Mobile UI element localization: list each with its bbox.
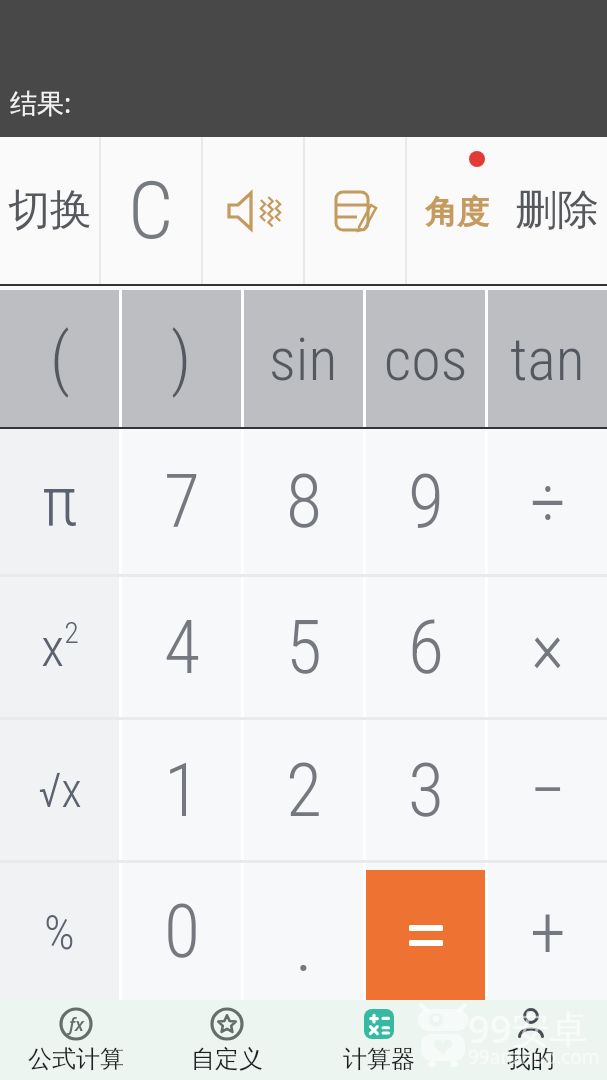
staticText: 6 [408,604,444,691]
staticText: 4 [164,604,200,691]
button[interactable]: 5 [244,577,363,717]
staticText: 1 [164,747,200,834]
staticText: . [295,902,313,989]
staticText: 切换 [8,184,92,237]
staticText: 9 [408,458,444,545]
button[interactable]: % [0,863,119,1000]
staticText: 99anzhuo.com [468,1044,600,1070]
button[interactable]: . [244,863,363,1000]
button[interactable] [203,137,303,284]
staticText: tan [510,324,585,394]
button[interactable]: 0 [122,863,241,1000]
button[interactable]: √x [0,720,119,860]
staticText: 自定义 [191,1044,263,1074]
button[interactable]: sin [244,290,363,427]
staticText: 8 [286,458,322,545]
staticText: 角度 [425,192,489,232]
staticText: 公式计算 [28,1044,124,1074]
staticText: 7 [164,458,200,545]
staticText: − [530,748,566,832]
button[interactable]: fx [0,1000,151,1080]
button[interactable]: ( [0,290,119,427]
button[interactable]: 角度 [407,137,507,284]
button[interactable]: cos [366,290,485,427]
staticText: π [42,462,78,542]
button[interactable]: 1 [122,720,241,860]
button[interactable]: 4 [122,577,241,717]
button[interactable]: ÷ [488,429,607,574]
staticText: 99安卓 [468,1002,588,1054]
staticText: cos [384,324,468,394]
staticText: 5 [286,604,322,691]
button[interactable]: 6 [366,577,485,717]
staticText: 计算器 [343,1044,415,1074]
staticText: √x [38,762,82,818]
button[interactable]: − [488,720,607,860]
button[interactable]: 切换 [0,137,99,284]
button[interactable]: 自定义 [151,1000,303,1080]
button[interactable]: tan [488,290,607,427]
button[interactable]: π [0,429,119,574]
staticText: 0 [164,888,200,975]
staticText: + [530,890,566,974]
button[interactable]: 3 [366,720,485,860]
button[interactable]: 我的 [455,1000,607,1080]
staticText: 我的 [507,1044,555,1074]
button[interactable]: × [488,577,607,717]
staticText: % [44,904,75,960]
button[interactable]: ) [122,290,241,427]
staticText: 3 [408,747,444,834]
button[interactable]: 2 [244,720,363,860]
button[interactable]: 8 [244,429,363,574]
button[interactable]: 9 [366,429,485,574]
staticText: ÷ [530,460,566,544]
staticText: × [531,605,565,689]
button[interactable]: 删除 [507,137,607,284]
button[interactable]: 7 [122,429,241,574]
staticText: sin [269,324,338,394]
staticText: fx [69,1013,84,1036]
button[interactable]: 计算器 [303,1000,455,1080]
button[interactable]: x2 [0,577,119,717]
staticText: 2 [286,747,322,834]
button[interactable]: + [488,863,607,1000]
staticText: 删除 [515,184,599,237]
staticText: C [128,164,174,258]
button[interactable]: C [101,137,201,284]
button[interactable] [305,137,405,284]
staticText: ( [50,319,70,399]
staticText: x2 [41,615,79,680]
staticText: ) [171,319,192,399]
button[interactable] [366,863,485,1000]
staticText: 结果: [10,84,72,121]
